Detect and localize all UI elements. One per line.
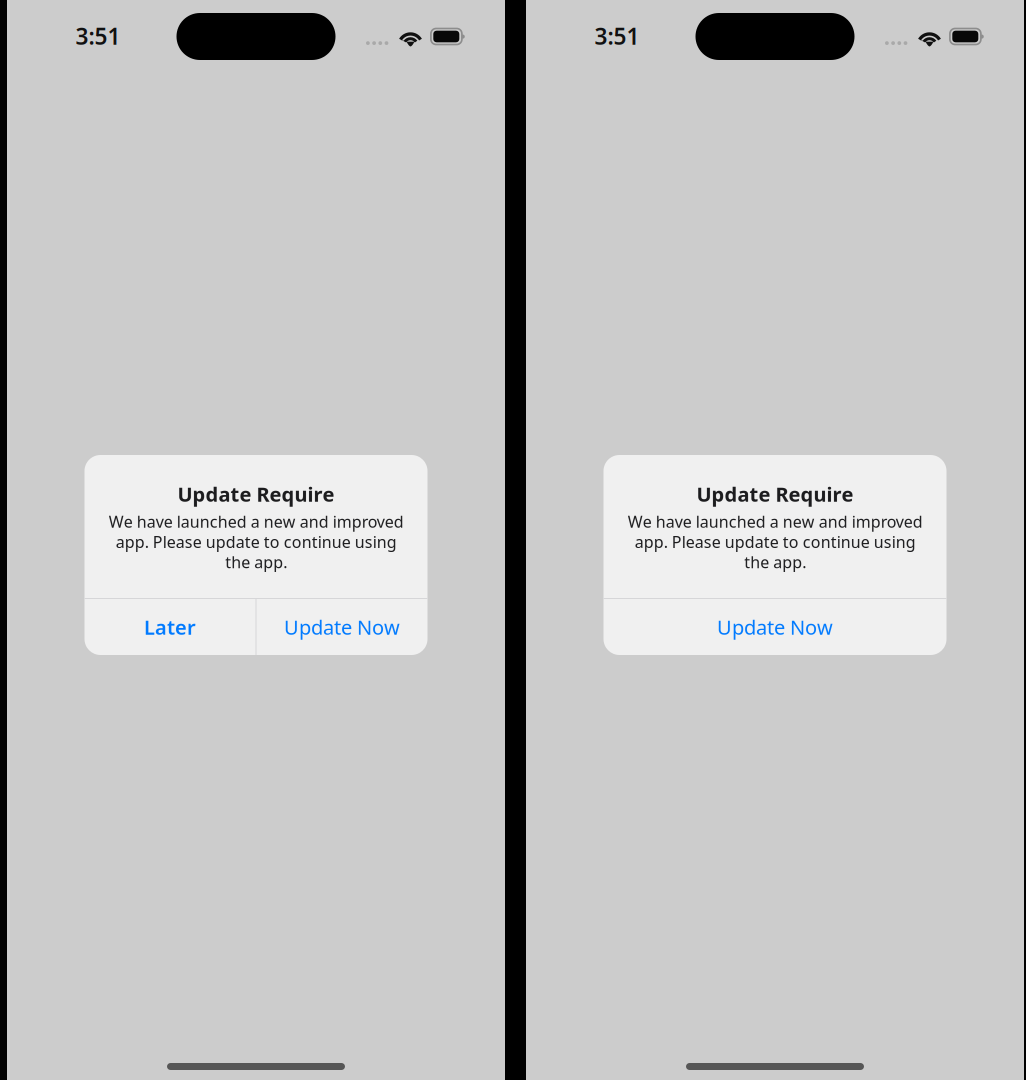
staticText: Update Now (717, 614, 833, 640)
staticText: 3:51 (594, 21, 639, 51)
staticText: We have launched a new and improved app.… (108, 511, 403, 573)
staticText: Update Require (177, 481, 334, 507)
staticText: Update Now (284, 614, 400, 640)
button[interactable]: Later (84, 599, 255, 655)
staticText: We have launched a new and improved app.… (627, 511, 922, 573)
button[interactable]: Update Now (603, 599, 946, 655)
staticText: 3:51 (75, 21, 120, 51)
staticText: Update Require (696, 481, 853, 507)
button[interactable]: Update Now (256, 599, 427, 655)
staticText: Later (144, 614, 196, 640)
